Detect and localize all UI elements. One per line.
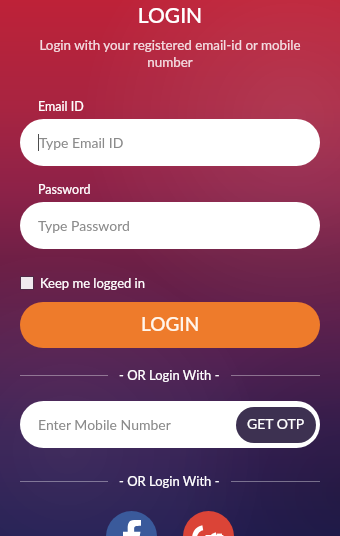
staticText: - OR Login With - (119, 473, 220, 489)
button[interactable]: GET OTP (236, 407, 316, 443)
staticText: - OR Login With - (119, 367, 220, 383)
staticText: Type Email ID (39, 134, 124, 151)
button[interactable]: Keep me logged in (20, 273, 145, 293)
button[interactable]: LOGIN (20, 302, 320, 348)
staticText: Keep me logged in (40, 275, 145, 291)
staticText: LOGIN (0, 2, 340, 27)
staticText: Login with your registered email-id or m… (30, 37, 310, 69)
button[interactable]: Login with Facebook (106, 511, 157, 536)
button[interactable]: Enter Mobile Number (20, 401, 320, 448)
staticText: Password (38, 182, 91, 197)
button[interactable]: Type Email ID (20, 119, 320, 166)
button[interactable]: Login with Google (183, 511, 234, 536)
button[interactable]: Type Password (20, 202, 320, 249)
staticText: Enter Mobile Number (38, 416, 171, 433)
staticText: GET OTP (247, 415, 305, 432)
staticText: LOGIN (141, 312, 200, 335)
staticText: Type Password (38, 217, 130, 234)
staticText: Email ID (38, 99, 84, 114)
